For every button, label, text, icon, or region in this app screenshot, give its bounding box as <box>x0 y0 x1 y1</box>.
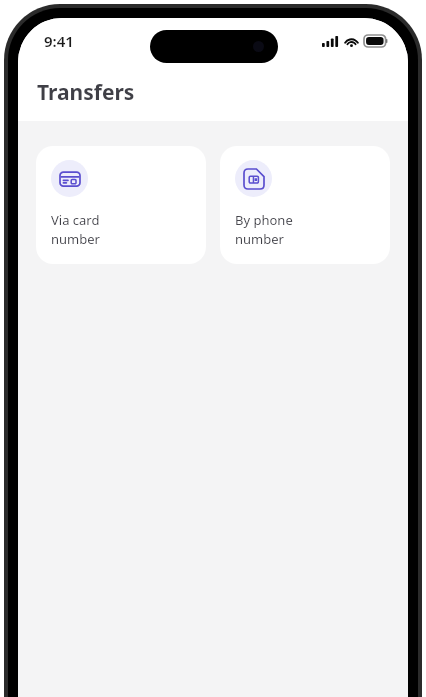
other: By phone number <box>244 169 264 189</box>
button[interactable]: Via card number <box>36 146 206 264</box>
staticText: Transfers <box>37 78 135 107</box>
staticText: Via card number <box>51 211 100 248</box>
staticText: 9:41 <box>44 31 74 51</box>
other: Via card number <box>60 169 80 189</box>
staticText: By phone number <box>235 211 293 248</box>
button[interactable]: By phone number <box>220 146 390 264</box>
